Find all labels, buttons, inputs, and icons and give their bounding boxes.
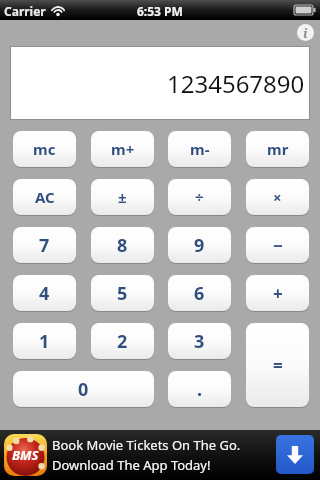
staticText: .: [197, 377, 203, 402]
button[interactable]: 0: [13, 371, 154, 407]
staticText: ÷: [195, 187, 204, 207]
staticText: ×: [273, 187, 282, 207]
staticText: 8: [117, 233, 128, 258]
staticText: Carrier: [4, 3, 46, 19]
staticText: Download The App Today!: [52, 456, 211, 474]
button[interactable]: 1: [13, 323, 76, 359]
button[interactable]: ÷: [168, 179, 231, 215]
staticText: m+: [111, 139, 135, 159]
button[interactable]: 2: [91, 323, 154, 359]
button[interactable]: 3: [168, 323, 231, 359]
staticText: +: [273, 282, 283, 305]
button[interactable]: ×: [246, 179, 309, 215]
button[interactable]: m+: [91, 131, 154, 167]
button[interactable]: 8: [91, 227, 154, 263]
staticText: AC: [35, 187, 55, 207]
button[interactable]: 6: [168, 275, 231, 311]
staticText: 0: [78, 377, 89, 402]
button[interactable]: 7: [13, 227, 76, 263]
button[interactable]: −: [246, 227, 309, 263]
staticText: ±: [118, 187, 127, 207]
button[interactable]: .: [168, 371, 231, 407]
staticText: 9: [194, 233, 205, 258]
button[interactable]: =: [246, 323, 309, 407]
button[interactable]: BMS: [0, 430, 320, 480]
staticText: −: [273, 234, 283, 257]
staticText: 3: [194, 329, 205, 354]
button[interactable]: 5: [91, 275, 154, 311]
button[interactable]: [276, 435, 314, 474]
staticText: 4: [39, 281, 50, 306]
button[interactable]: 4: [13, 275, 76, 311]
button[interactable]: AC: [13, 179, 76, 215]
staticText: Book Movie Tickets On The Go.: [52, 436, 241, 454]
staticText: BMS: [12, 446, 39, 464]
staticText: mr: [267, 139, 289, 159]
staticText: 6: [194, 281, 205, 306]
staticText: m-: [190, 139, 210, 159]
button[interactable]: 9: [168, 227, 231, 263]
staticText: 5: [117, 281, 128, 306]
button[interactable]: i: [297, 24, 314, 41]
staticText: 2: [117, 329, 128, 354]
staticText: mc: [33, 139, 56, 159]
button[interactable]: ±: [91, 179, 154, 215]
staticText: 1234567890: [167, 67, 305, 100]
button[interactable]: mr: [246, 131, 309, 167]
staticText: i: [303, 24, 308, 41]
button[interactable]: +: [246, 275, 309, 311]
button[interactable]: m-: [168, 131, 231, 167]
button[interactable]: mc: [13, 131, 76, 167]
staticText: 7: [39, 233, 50, 258]
staticText: 1: [39, 329, 50, 354]
staticText: =: [273, 354, 283, 377]
staticText: 6:53 PM: [137, 3, 183, 19]
